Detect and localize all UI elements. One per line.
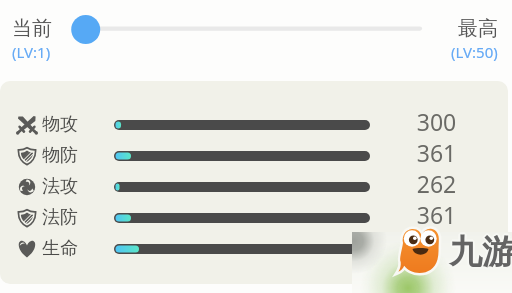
staticText: 九游 — [449, 229, 512, 271]
button[interactable]: 当前 — [12, 16, 52, 62]
staticText: 生命 — [42, 237, 78, 260]
staticText: 物防 — [42, 144, 78, 167]
staticText: 九游 — [448, 231, 512, 273]
staticText: 九游 — [450, 231, 512, 273]
staticText: 九游 — [450, 232, 512, 274]
staticText: 999 — [402, 230, 471, 260]
button[interactable]: 最高 — [432, 16, 498, 62]
staticText: 九游 — [449, 233, 512, 275]
staticText: 九游 — [448, 230, 512, 272]
staticText: 九游 — [449, 231, 512, 273]
staticText: 361 — [402, 137, 471, 167]
staticText: (LV:1) — [12, 42, 51, 62]
staticText: 九游 — [449, 232, 512, 274]
staticText: 物攻 — [42, 113, 78, 136]
button[interactable]: 物攻 — [0, 110, 508, 140]
staticText: 当前 — [12, 16, 52, 41]
button[interactable]: 物防 — [0, 141, 508, 171]
staticText: 九游 — [450, 230, 512, 272]
staticText: 九游 — [451, 231, 512, 273]
staticText: 法防 — [42, 206, 78, 229]
button[interactable]: 法攻 — [0, 172, 508, 202]
staticText: 法攻 — [42, 175, 78, 198]
staticText: 361 — [402, 199, 471, 229]
staticText: 九游 — [448, 232, 512, 274]
staticText: 最高 — [458, 16, 498, 41]
staticText: 九游 — [447, 231, 512, 273]
button[interactable]: 法防 — [0, 203, 508, 233]
staticText: (LV:50) — [451, 42, 498, 62]
staticText: 300 — [402, 106, 471, 136]
staticText: 九游 — [449, 230, 512, 272]
button[interactable]: 生命 — [0, 234, 508, 264]
staticText: 262 — [402, 168, 471, 198]
